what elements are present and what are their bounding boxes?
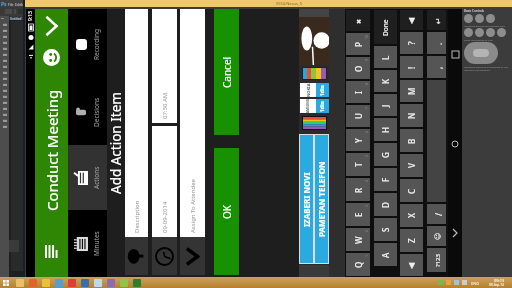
button[interactable]: Actions <box>68 145 107 210</box>
staticText: ◀ <box>407 262 416 269</box>
staticText: 09:13 <box>494 278 505 283</box>
button[interactable]: Hardware button <box>464 28 473 37</box>
staticText: OK <box>220 205 234 219</box>
staticText: 5 <box>364 154 369 157</box>
button[interactable]: Y <box>346 129 370 151</box>
button[interactable]: / <box>427 204 449 224</box>
button[interactable]: . <box>427 32 449 54</box>
staticText: Basic Controls <box>464 9 484 13</box>
staticText: File <box>8 2 14 7</box>
button[interactable]: Assign To Attendee <box>180 9 205 237</box>
staticText: Use your real keyboard <box>464 68 490 71</box>
button[interactable]: P <box>346 33 370 55</box>
staticText: F <box>380 177 391 182</box>
button[interactable]: R <box>346 178 370 201</box>
button[interactable]: N <box>400 104 423 127</box>
staticText: Conduct Meeting <box>42 89 62 211</box>
button[interactable]: Hardware button <box>497 28 506 37</box>
button[interactable]: , <box>427 56 449 78</box>
staticText: S <box>380 227 391 232</box>
button[interactable]: Back <box>448 188 462 277</box>
button[interactable]: Hardware button <box>475 28 484 37</box>
button[interactable]: Decisions <box>68 78 107 145</box>
staticText: 10 <box>364 34 369 39</box>
button[interactable]: ↵ <box>427 10 449 30</box>
button[interactable]: Space <box>427 80 449 202</box>
staticText: . <box>433 42 444 45</box>
button[interactable]: Recording <box>68 9 107 78</box>
staticText: ENG <box>471 281 480 286</box>
staticText: E <box>353 212 364 217</box>
staticText: Edit <box>15 2 22 7</box>
button[interactable]: OK <box>214 148 239 275</box>
button[interactable]: O <box>346 57 370 79</box>
staticText: 5554:Nexus_S <box>276 1 302 6</box>
staticText: U <box>353 113 364 119</box>
button[interactable]: mic <box>125 237 148 275</box>
button[interactable]: Control <box>475 14 484 23</box>
button[interactable]: T <box>346 153 370 176</box>
button[interactable]: Profile <box>35 45 68 69</box>
staticText: IZABERI NOVI <box>301 172 312 227</box>
staticText: Im <box>21 2 26 7</box>
button[interactable]: Minutes <box>68 210 107 277</box>
button[interactable]: W <box>346 228 370 251</box>
staticText: 8 <box>364 82 369 85</box>
button[interactable]: Recents <box>448 9 462 99</box>
staticText: B <box>406 138 417 144</box>
staticText: I <box>353 91 364 94</box>
button[interactable]: ✖ <box>346 10 370 31</box>
button[interactable]: Q <box>346 253 370 276</box>
button[interactable]: Z <box>400 229 423 252</box>
button[interactable]: Description <box>125 9 148 237</box>
button[interactable]: ☺ <box>427 226 449 246</box>
staticText: L <box>380 55 391 60</box>
button[interactable]: Done <box>374 10 397 44</box>
button[interactable]: G <box>374 143 397 166</box>
button[interactable]: Hardware button <box>486 28 495 37</box>
staticText: O <box>353 65 364 72</box>
button[interactable]: clock <box>152 237 177 275</box>
staticText: Done <box>381 19 390 36</box>
button[interactable]: C <box>400 179 423 202</box>
staticText: Assign To Attendee <box>189 179 197 233</box>
button[interactable]: Forward <box>35 13 68 39</box>
button[interactable]: V <box>400 154 423 177</box>
button[interactable]: ◀ <box>400 10 423 30</box>
staticText: Cancel <box>220 56 234 88</box>
button[interactable]: D <box>374 193 397 216</box>
staticText: P <box>353 42 364 47</box>
button[interactable]: F <box>374 168 397 191</box>
button[interactable]: B <box>400 129 423 152</box>
button[interactable]: Menu <box>35 231 68 271</box>
button[interactable]: ! <box>400 56 423 78</box>
button[interactable]: Control <box>486 14 495 23</box>
button[interactable]: J <box>374 94 397 116</box>
staticText: G <box>380 152 391 158</box>
button[interactable]: 09-09-2014 <box>152 126 177 237</box>
button[interactable]: M <box>400 80 423 102</box>
button[interactable]: U <box>346 105 370 127</box>
staticText: M <box>406 87 417 95</box>
staticText: Y <box>353 138 364 143</box>
button[interactable]: Control <box>464 14 473 23</box>
button[interactable]: Home <box>448 99 462 188</box>
button[interactable]: Cancel <box>214 9 239 135</box>
staticText: PAMETAN TELEFON <box>316 161 327 237</box>
button[interactable]: E <box>346 203 370 226</box>
button[interactable]: K <box>374 70 397 92</box>
button[interactable]: S <box>374 218 397 241</box>
button[interactable]: I <box>346 81 370 103</box>
button[interactable]: H <box>374 118 397 141</box>
button[interactable]: ? <box>400 32 423 54</box>
button[interactable]: X <box>400 204 423 227</box>
button[interactable]: A <box>374 243 397 266</box>
button[interactable]: ?123 <box>427 248 449 272</box>
button[interactable]: ◀ <box>400 254 423 276</box>
staticText: K <box>380 78 391 84</box>
button[interactable]: L <box>374 46 397 68</box>
button[interactable]: 07:30 AM <box>152 9 177 123</box>
button[interactable]: next <box>180 237 205 275</box>
staticText: W <box>353 236 364 244</box>
staticText: Q <box>353 261 364 268</box>
